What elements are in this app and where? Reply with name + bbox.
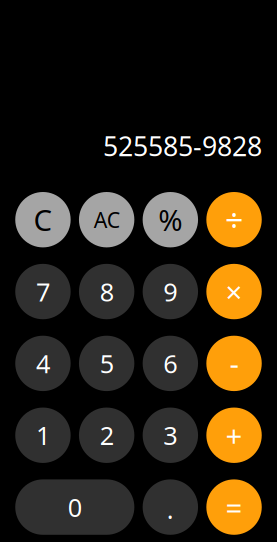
button[interactable]: 6 [143,336,198,391]
staticText: 4 [36,347,50,380]
button[interactable]: All clear [79,192,134,247]
staticText: 2 [100,418,114,452]
staticText: 3 [163,418,177,452]
staticText: C [33,200,52,239]
button[interactable]: Clear [15,192,71,247]
staticText: 5 [100,347,114,380]
button[interactable]: Divide [206,192,262,247]
button[interactable]: Add [206,407,262,463]
staticText: × [226,272,243,311]
staticText: . [167,492,174,526]
button[interactable]: 0 [15,479,134,535]
staticText: AC [94,205,120,234]
staticText: 1 [36,418,50,452]
staticText: 6 [163,347,177,380]
staticText: 9 [163,275,177,308]
button[interactable]: Equals [206,479,262,535]
button[interactable]: 4 [15,336,71,391]
button[interactable]: 2 [79,407,134,463]
button[interactable]: Subtract [206,336,262,391]
button[interactable]: 9 [143,264,198,319]
staticText: - [230,344,239,383]
staticText: 8 [100,275,114,308]
button[interactable]: 1 [15,407,71,463]
staticText: % [158,200,182,239]
button[interactable]: 7 [15,264,71,319]
staticText: 7 [36,275,50,308]
staticText: 0 [68,490,82,524]
button[interactable]: 8 [79,264,134,319]
button[interactable]: Percent [143,192,198,247]
button[interactable]: 5 [79,336,134,391]
staticText: + [226,416,243,455]
button[interactable]: Multiply [206,264,262,319]
button[interactable]: Decimal point [143,479,198,535]
staticText: ÷ [225,198,243,241]
staticText: = [225,488,242,527]
staticText: 525585-9828 [103,128,262,163]
button[interactable]: 3 [143,407,198,463]
